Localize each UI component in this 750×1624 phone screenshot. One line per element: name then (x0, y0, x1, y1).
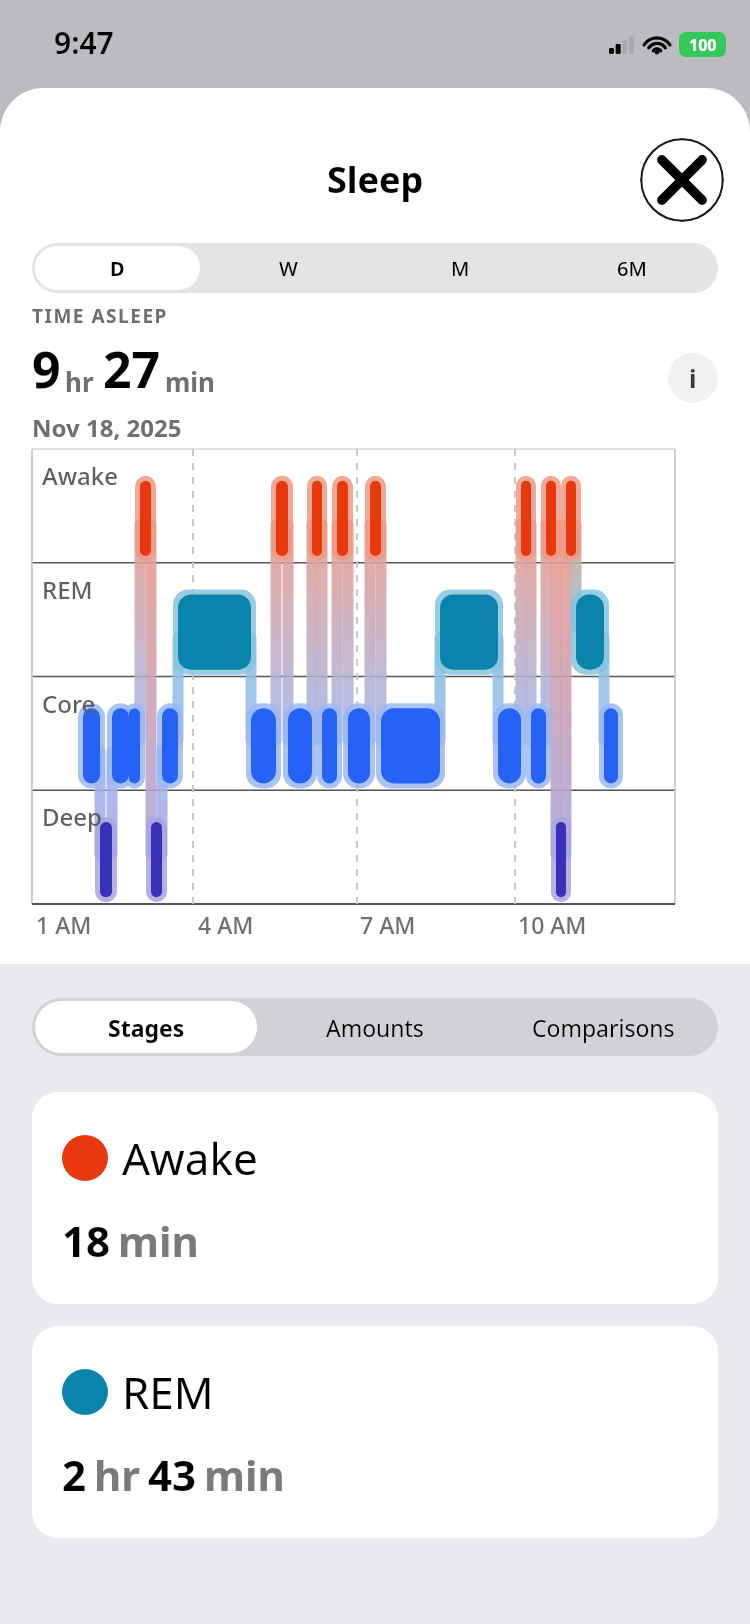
button[interactable]: Amounts (263, 1001, 486, 1053)
staticText: 18 (62, 1212, 111, 1269)
button[interactable]: Stages (35, 1001, 257, 1053)
staticText: min (118, 1212, 199, 1269)
staticText: 9:47 (54, 22, 114, 63)
staticText: 27 (103, 335, 161, 403)
staticText: D (110, 255, 125, 282)
staticText: min (165, 364, 216, 399)
staticText: 2 (62, 1446, 87, 1503)
staticText: Core (42, 687, 96, 720)
staticText: 9 (32, 335, 61, 403)
staticText: 6M (617, 255, 647, 282)
staticText: M (451, 255, 470, 282)
staticText: Sleep (327, 155, 424, 204)
staticText: Awake (122, 1128, 258, 1188)
staticText: Nov 18, 2025 (32, 411, 182, 444)
staticText: i (689, 361, 697, 395)
staticText: hr (65, 364, 94, 399)
staticText: 10 AM (518, 909, 587, 940)
staticText: 7 AM (360, 909, 416, 940)
button[interactable]: Info (668, 353, 718, 403)
staticText: 43 (148, 1446, 197, 1503)
staticText: 4 AM (198, 909, 254, 940)
staticText: Comparisons (532, 1012, 675, 1043)
staticText: TIME ASLEEP (32, 303, 168, 329)
button[interactable]: W (206, 246, 371, 290)
staticText: Amounts (326, 1012, 424, 1043)
staticText: 100 (689, 34, 717, 56)
button[interactable]: Comparisons (492, 1001, 715, 1053)
button[interactable]: 6M (549, 246, 715, 290)
staticText: REM (42, 573, 93, 606)
staticText: W (279, 255, 298, 282)
button[interactable]: M (377, 246, 543, 290)
button[interactable]: Close (640, 138, 724, 222)
staticText: hr (94, 1446, 141, 1503)
staticText: REM (122, 1362, 214, 1422)
button[interactable]: REM (32, 1326, 718, 1538)
staticText: Stages (108, 1012, 185, 1043)
staticText: 1 AM (36, 909, 92, 940)
staticText: min (204, 1446, 285, 1503)
button[interactable]: D (35, 246, 200, 290)
button[interactable]: Awake (32, 1092, 718, 1304)
staticText: Deep (42, 800, 102, 833)
staticText: Awake (42, 459, 119, 492)
